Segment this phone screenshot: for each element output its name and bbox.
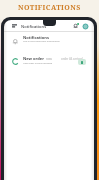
button[interactable]: Toggle bbox=[78, 59, 86, 65]
button[interactable]: Alerts bbox=[72, 22, 80, 30]
staticText: New order bbox=[23, 56, 44, 61]
button[interactable]: Profile bbox=[81, 22, 90, 31]
staticText: Notifications bbox=[23, 35, 49, 40]
staticText: This is very important information bbox=[23, 40, 60, 43]
staticText: New order #4 was received bbox=[23, 62, 53, 65]
staticText: Notifications bbox=[21, 24, 47, 29]
button[interactable]: Menu bbox=[4, 21, 94, 31]
staticText: order #4 arrived bbox=[61, 57, 83, 61]
staticText: now bbox=[46, 57, 52, 61]
staticText: NOTIFICATIONS bbox=[18, 3, 81, 13]
other: Menu bbox=[12, 24, 17, 28]
